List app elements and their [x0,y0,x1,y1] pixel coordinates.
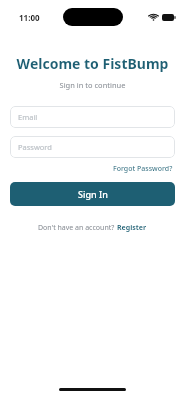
button[interactable]: Sign In [10,182,175,206]
staticText: 11:00 [19,12,40,23]
staticText: Sign In [78,188,108,200]
button[interactable]: Password [10,136,175,158]
staticText: Forgot Password? [113,164,173,174]
button[interactable]: Email [10,106,175,128]
button[interactable]: Forgot Password? [111,162,175,176]
button[interactable]: Register [117,223,147,233]
staticText: Welcome to FistBump [0,54,185,73]
staticText: Email [18,112,38,122]
staticText: Don't have an account? [38,223,117,233]
staticText: Password [18,142,52,152]
staticText: Sign in to continue [0,80,185,90]
staticText: Register [117,223,147,233]
